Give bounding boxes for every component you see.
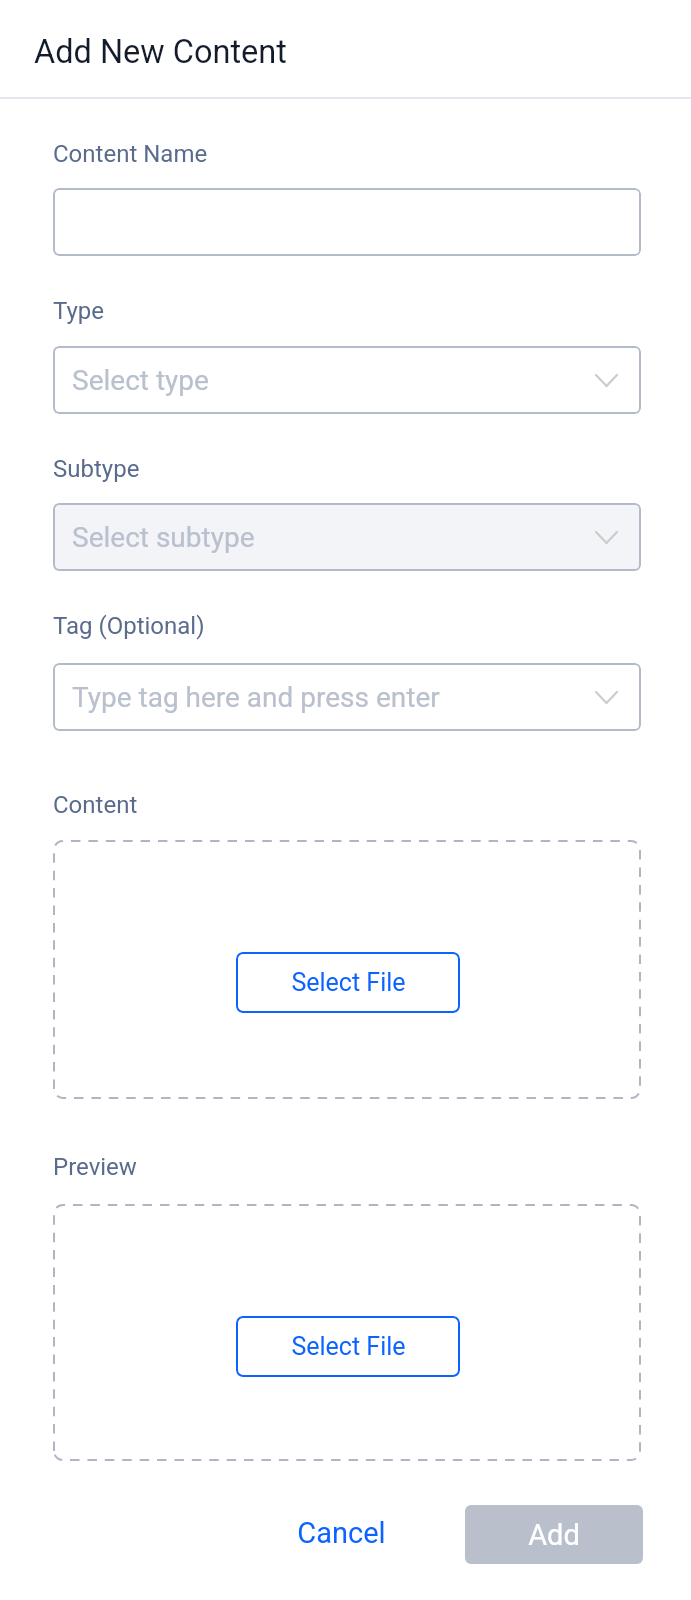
button[interactable]: Type tag here and press enter: [53, 663, 641, 731]
staticText: Tag (Optional): [53, 612, 205, 640]
other: Open dropdown: [596, 375, 617, 386]
other: Open dropdown: [596, 532, 617, 543]
staticText: Add New Content: [34, 33, 287, 71]
other: Open dropdown: [596, 692, 617, 703]
button[interactable]: Select File: [236, 1316, 460, 1377]
staticText: Subtype: [53, 455, 140, 483]
staticText: Type: [53, 297, 105, 325]
staticText: Select File: [291, 1332, 406, 1361]
button[interactable]: Select File: [236, 952, 460, 1013]
staticText: Content Name: [53, 140, 208, 168]
staticText: Select subtype: [72, 521, 255, 554]
button[interactable]: Add: [465, 1505, 643, 1564]
button[interactable]: Select subtype: [53, 503, 641, 571]
staticText: Cancel: [297, 1516, 386, 1550]
staticText: Preview: [53, 1153, 137, 1181]
staticText: Content: [53, 791, 138, 819]
button[interactable]: Content Name input: [53, 188, 641, 256]
staticText: Add: [528, 1518, 580, 1552]
button[interactable]: Cancel: [281, 1503, 401, 1563]
staticText: Select type: [72, 364, 209, 397]
button[interactable]: Select type: [53, 346, 641, 414]
staticText: Type tag here and press enter: [72, 681, 440, 714]
staticText: Select File: [291, 968, 406, 997]
